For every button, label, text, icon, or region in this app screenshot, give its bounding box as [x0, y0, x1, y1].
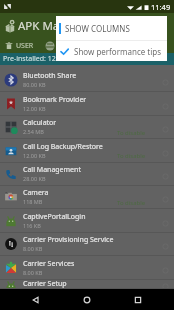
staticText: Carrier Setup — [23, 279, 67, 288]
button[interactable]: Back — [21, 289, 51, 310]
staticText: 80.00 KB — [23, 81, 46, 88]
button[interactable]: Bluetooth Share — [0, 68, 174, 92]
button[interactable]: Carrier Setup — [0, 280, 174, 289]
staticText: 116 KB — [23, 222, 41, 229]
button[interactable]: Call Log Backup/Restore — [0, 139, 174, 163]
staticText: Pre-installed: 127 — [3, 54, 60, 64]
button[interactable]: Camera — [0, 186, 174, 209]
button[interactable]: Carrier Services — [0, 256, 174, 280]
staticText: 2.54 MB — [23, 128, 44, 135]
staticText: 12.00 KB — [23, 105, 46, 112]
staticText: 11:49 — [151, 2, 171, 12]
button[interactable]: Uninstall — [4, 40, 35, 52]
staticText: Show performance tips — [74, 46, 162, 57]
staticText: USER — [16, 41, 34, 51]
staticText: To disable — [117, 199, 146, 207]
button[interactable]: Call Management — [0, 163, 174, 186]
staticText: To disable — [117, 129, 146, 137]
button[interactable]: App logo — [0, 13, 174, 39]
staticText: CaptivePortalLogin — [23, 212, 86, 222]
staticText: To disable — [117, 152, 146, 160]
staticText: 8.00 KB — [23, 269, 43, 276]
button[interactable]: Home — [72, 289, 102, 310]
staticText: Carrier Services — [23, 259, 75, 269]
button[interactable]: Calculator — [0, 116, 174, 139]
staticText: 12.00 KB — [23, 152, 46, 159]
button[interactable]: SHOW COLUMNS — [56, 16, 167, 40]
other: Uninstall — [5, 42, 13, 50]
staticText: Camera — [23, 188, 49, 198]
staticText: Call Log Backup/Restore — [23, 142, 103, 152]
staticText: SHOW COLUMNS — [65, 23, 130, 34]
staticText: Bluetooth Share — [23, 71, 77, 81]
staticText: Call Management — [23, 165, 81, 175]
other: System apps — [45, 41, 55, 51]
staticText: Bookmark Provider — [23, 95, 87, 105]
button[interactable]: Bookmark Provider — [0, 92, 174, 116]
staticText: APK Manager — [18, 18, 92, 34]
other: App logo — [3, 19, 17, 33]
button[interactable]: Show performance tips — [56, 41, 167, 61]
staticText: 118 MB — [23, 198, 43, 205]
staticText: Carrier Provisioning Service — [23, 235, 114, 245]
button[interactable]: Recents — [123, 289, 153, 310]
staticText: 8.00 KB — [23, 245, 43, 252]
button[interactable]: CaptivePortalLogin — [0, 209, 174, 233]
button[interactable]: System apps — [44, 40, 56, 52]
staticText: 28.00 KB — [23, 175, 46, 182]
staticText: Calculator — [23, 118, 57, 128]
button[interactable]: Carrier Provisioning Service — [0, 233, 174, 256]
